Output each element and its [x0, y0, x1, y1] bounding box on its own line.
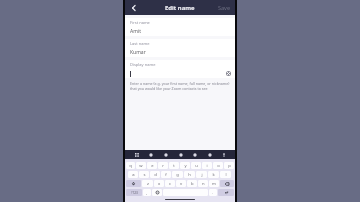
button[interactable]: Save: [214, 2, 235, 13]
button[interactable]: Kumar: [125, 48, 235, 57]
staticText: c: [169, 181, 172, 187]
staticText: z: [147, 181, 149, 187]
button[interactable]: ,: [143, 189, 151, 196]
button[interactable]: r: [158, 162, 168, 169]
staticText: o: [217, 163, 220, 169]
button[interactable]: Emoji: [152, 189, 162, 196]
button[interactable]: e: [147, 162, 157, 169]
button[interactable]: m: [209, 180, 219, 187]
staticText: g: [176, 172, 179, 178]
staticText: l: [225, 172, 227, 178]
staticText: p: [228, 163, 231, 169]
staticText: q: [129, 163, 132, 169]
staticText: x: [158, 181, 161, 187]
staticText: m: [212, 181, 216, 187]
button[interactable]: p: [224, 162, 234, 169]
staticText: y: [184, 163, 187, 169]
staticText: b: [191, 181, 194, 187]
staticText: w: [139, 163, 143, 169]
button[interactable]: Clear text: [125, 69, 235, 78]
button[interactable]: j: [196, 171, 207, 178]
staticText: k: [212, 172, 215, 178]
staticText: v: [180, 181, 183, 187]
staticText: r: [162, 163, 164, 169]
staticText: Display name: [130, 62, 156, 67]
staticText: u: [195, 163, 198, 169]
staticText: Save: [218, 4, 231, 11]
staticText: ?123: [131, 191, 138, 195]
staticText: First name: [130, 20, 150, 25]
button[interactable]: Keyboard tool 3: [177, 151, 184, 158]
staticText: n: [202, 181, 205, 187]
button[interactable]: s: [139, 171, 149, 178]
staticText: ,: [146, 190, 148, 195]
button[interactable]: Back: [128, 2, 140, 14]
button[interactable]: .: [209, 189, 217, 196]
button[interactable]: v: [176, 180, 186, 187]
staticText: Last name: [130, 41, 150, 46]
button[interactable]: x: [154, 180, 164, 187]
button[interactable]: u: [191, 162, 201, 169]
staticText: Edit name: [165, 4, 195, 12]
staticText: e: [151, 163, 154, 169]
staticText: h: [188, 172, 191, 178]
staticText: Amit: [130, 28, 141, 35]
staticText: Kumar: [130, 49, 146, 56]
button[interactable]: l: [220, 171, 231, 178]
staticText: Enter a name (e.g. your first name, full…: [130, 81, 230, 91]
staticText: f: [165, 172, 167, 178]
staticText: s: [143, 172, 146, 178]
staticText: d: [154, 172, 157, 178]
button[interactable]: w: [136, 162, 146, 169]
button[interactable]: i: [202, 162, 212, 169]
button[interactable]: o: [213, 162, 223, 169]
button[interactable]: Keyboard tool 5: [206, 151, 213, 158]
button[interactable]: q: [126, 162, 135, 169]
button[interactable]: ?123: [126, 189, 142, 196]
button[interactable]: n: [198, 180, 208, 187]
button[interactable]: Keyboard tool 1: [147, 151, 154, 158]
button[interactable]: Keyboard tool 6: [220, 151, 227, 158]
button[interactable]: Amit: [125, 27, 235, 36]
button[interactable]: b: [187, 180, 197, 187]
button[interactable]: t: [169, 162, 179, 169]
button[interactable]: a: [128, 171, 138, 178]
button[interactable]: c: [165, 180, 175, 187]
button[interactable]: d: [150, 171, 160, 178]
button[interactable]: z: [142, 180, 153, 187]
staticText: i: [206, 163, 208, 169]
button[interactable]: g: [172, 171, 183, 178]
button[interactable]: Clear text: [226, 71, 231, 76]
button[interactable]: Keyboard tool 4: [191, 151, 198, 158]
button[interactable]: f: [161, 171, 171, 178]
staticText: t: [173, 163, 175, 169]
button[interactable]: k: [208, 171, 219, 178]
staticText: .: [212, 190, 214, 195]
button[interactable]: Keyboard tool 0: [133, 151, 140, 158]
button[interactable]: h: [184, 171, 195, 178]
button[interactable]: Shift: [126, 180, 141, 187]
button[interactable]: Enter: [218, 189, 234, 196]
button[interactable]: Keyboard tool 2: [162, 151, 169, 158]
button[interactable]: y: [180, 162, 190, 169]
staticText: j: [201, 172, 203, 178]
staticText: a: [132, 172, 135, 178]
button[interactable]: Backspace: [220, 180, 234, 187]
